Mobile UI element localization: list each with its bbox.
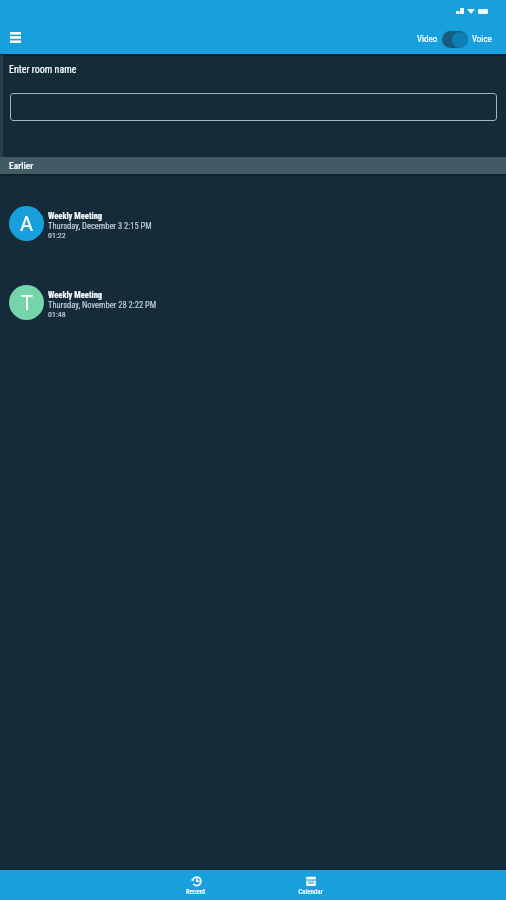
- staticText: Calendar: [298, 888, 323, 896]
- staticText: Enter room name: [9, 64, 77, 76]
- button[interactable]: Room name text field: [10, 93, 497, 121]
- button[interactable]: Calendar: [253, 870, 368, 900]
- button[interactable]: Video: [417, 30, 492, 48]
- staticText: Thursday, December 3 2:15 PM: [48, 221, 152, 231]
- staticText: Recent: [186, 888, 205, 896]
- button[interactable]: Open navigation menu: [3, 25, 28, 50]
- staticText: Weekly Meeting: [48, 290, 103, 300]
- staticText: A: [20, 212, 34, 235]
- staticText: 01:22: [48, 231, 66, 240]
- button[interactable]: Recent: [138, 870, 253, 900]
- staticText: Earlier: [9, 160, 34, 171]
- staticText: Thursday, November 28 2:22 PM: [48, 300, 157, 310]
- staticText: T: [21, 291, 33, 314]
- staticText: Weekly Meeting: [48, 211, 103, 221]
- staticText: Voice: [472, 34, 492, 45]
- button[interactable]: T: [0, 285, 506, 320]
- staticText: Video: [417, 34, 438, 45]
- staticText: 01:48: [48, 310, 66, 319]
- button[interactable]: A: [0, 206, 506, 241]
